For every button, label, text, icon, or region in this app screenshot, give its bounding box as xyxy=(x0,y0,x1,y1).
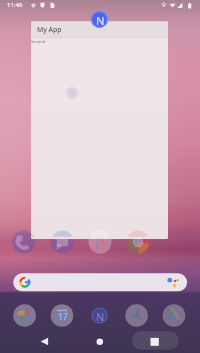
staticText: N xyxy=(96,13,105,28)
staticText: N xyxy=(69,87,76,98)
staticText: My App xyxy=(37,25,62,34)
staticText: 11:46 xyxy=(7,1,23,9)
staticText: N xyxy=(96,310,105,324)
staticText: Second xyxy=(31,39,46,45)
staticText: 17 xyxy=(58,311,68,323)
